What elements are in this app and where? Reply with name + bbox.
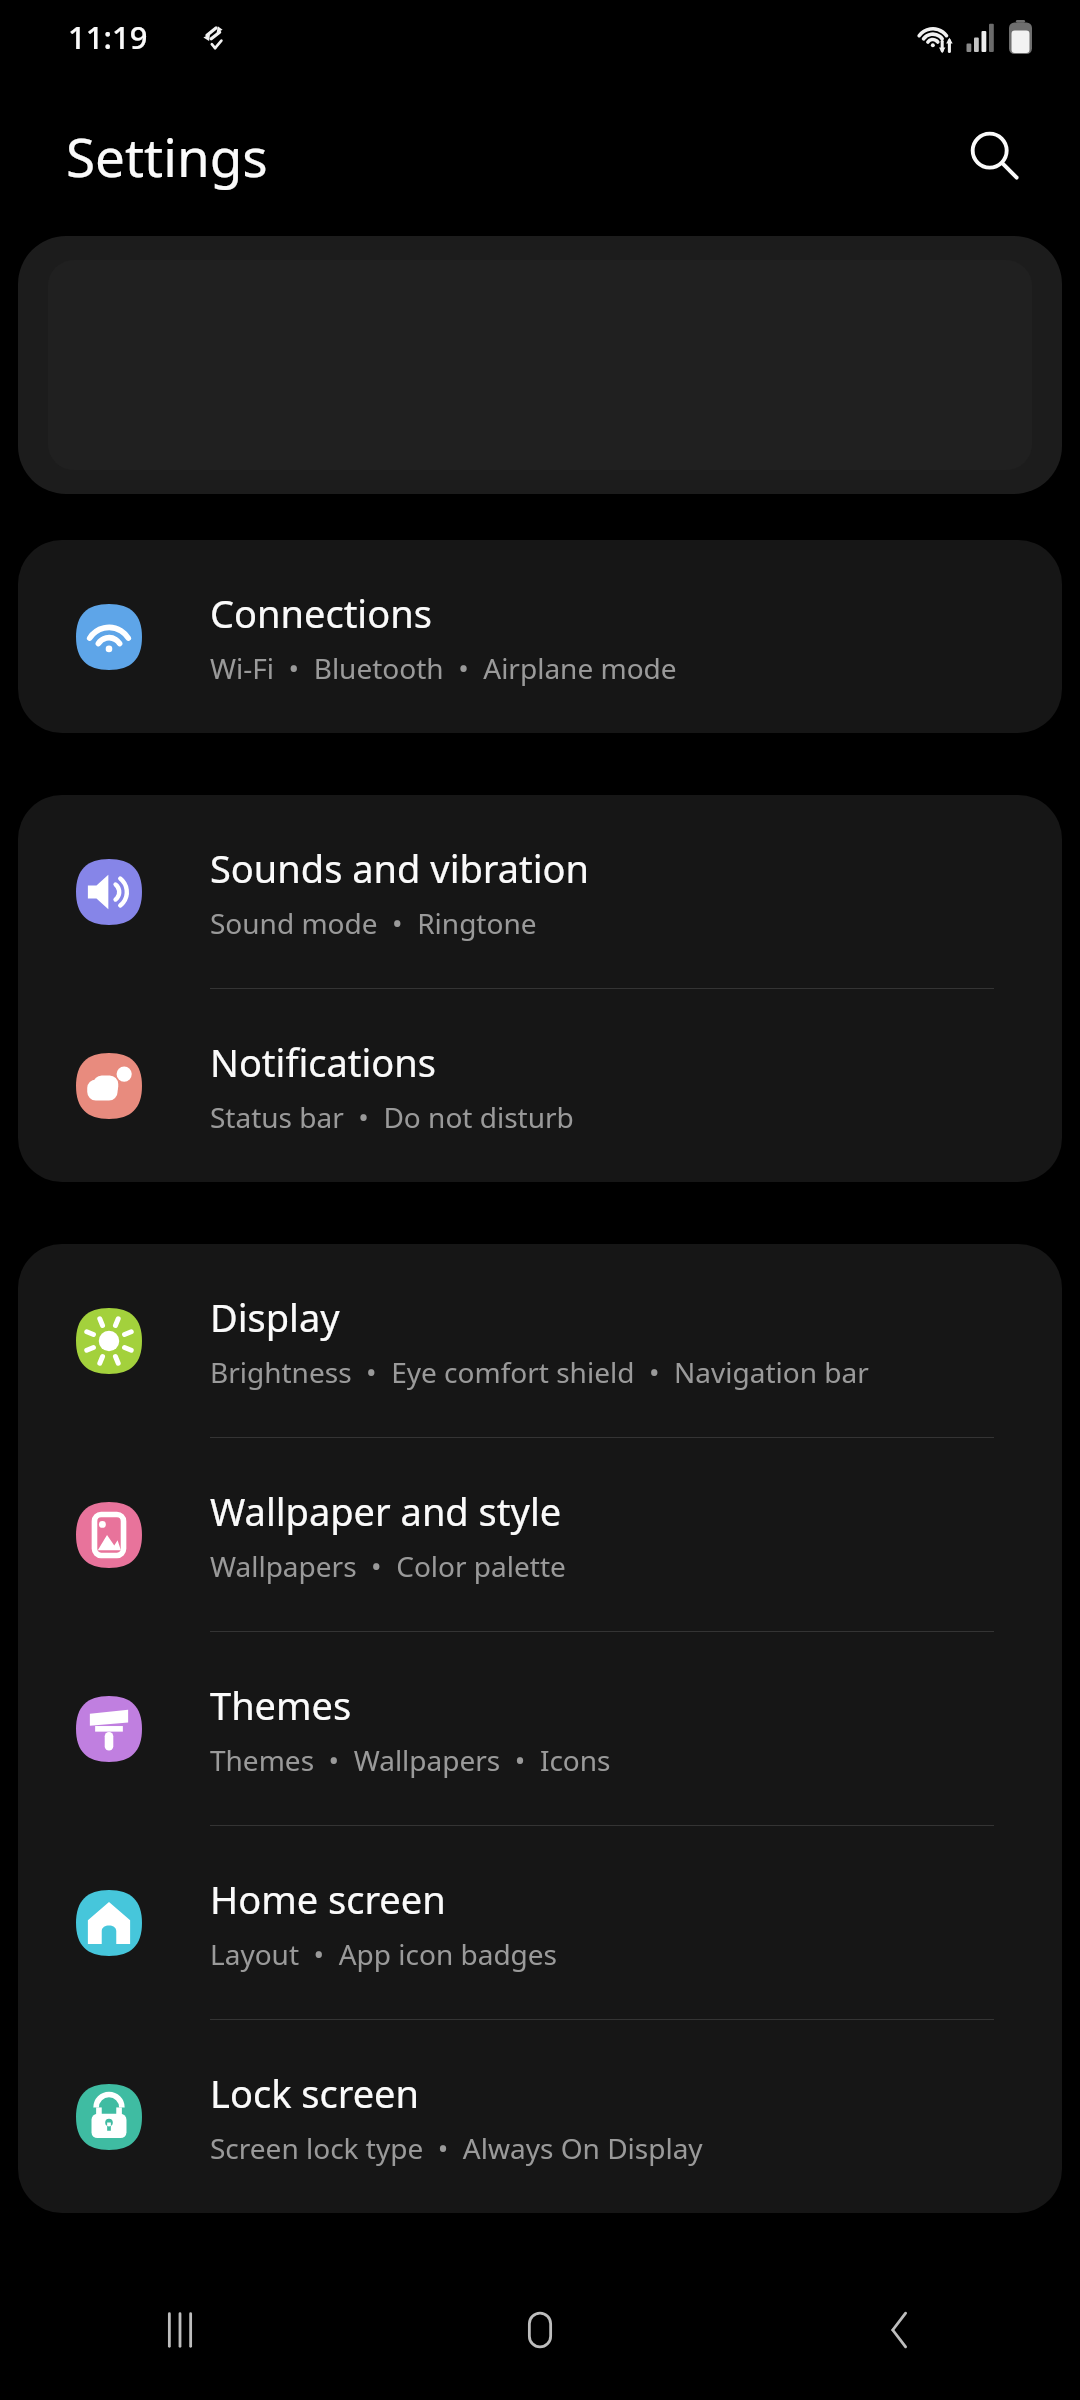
staticText: Status bar • Do not disturb bbox=[210, 1098, 574, 1136]
staticText: Sounds and vibration bbox=[210, 842, 590, 894]
staticText: Layout • App icon badges bbox=[210, 1935, 558, 1973]
button[interactable]: Themes bbox=[18, 1632, 1062, 1825]
button[interactable]: Samsung account card bbox=[18, 236, 1062, 494]
button[interactable]: Sounds and vibration bbox=[18, 795, 1062, 988]
staticText: Settings bbox=[66, 120, 268, 192]
button[interactable]: Search settings bbox=[952, 114, 1036, 198]
staticText: Themes • Wallpapers • Icons bbox=[210, 1741, 611, 1779]
button[interactable]: Recent apps bbox=[0, 2260, 360, 2400]
button[interactable]: Home bbox=[360, 2260, 720, 2400]
staticText: Notifications bbox=[210, 1036, 437, 1088]
staticText: Wallpapers • Color palette bbox=[210, 1547, 566, 1585]
button[interactable]: Notifications bbox=[18, 989, 1062, 1182]
staticText: Wi-Fi • Bluetooth • Airplane mode bbox=[210, 649, 677, 687]
staticText: 11:19 bbox=[68, 16, 148, 58]
staticText: Screen lock type • Always On Display bbox=[210, 2129, 703, 2167]
staticText: Brightness • Eye comfort shield • Naviga… bbox=[210, 1353, 869, 1391]
button[interactable]: Home screen bbox=[18, 1826, 1062, 2019]
staticText: Sound mode • Ringtone bbox=[210, 904, 537, 942]
button[interactable]: Back bbox=[720, 2260, 1080, 2400]
staticText: Home screen bbox=[210, 1873, 446, 1925]
staticText: Connections bbox=[210, 587, 432, 639]
button[interactable]: Connections bbox=[18, 540, 1062, 733]
staticText: Themes bbox=[210, 1679, 352, 1731]
staticText: Lock screen bbox=[210, 2067, 420, 2119]
button[interactable]: Display bbox=[18, 1244, 1062, 1437]
button[interactable]: Lock screen bbox=[18, 2020, 1062, 2213]
button[interactable]: Wallpaper and style bbox=[18, 1438, 1062, 1631]
staticText: Wallpaper and style bbox=[210, 1485, 562, 1537]
staticText: Display bbox=[210, 1291, 340, 1343]
